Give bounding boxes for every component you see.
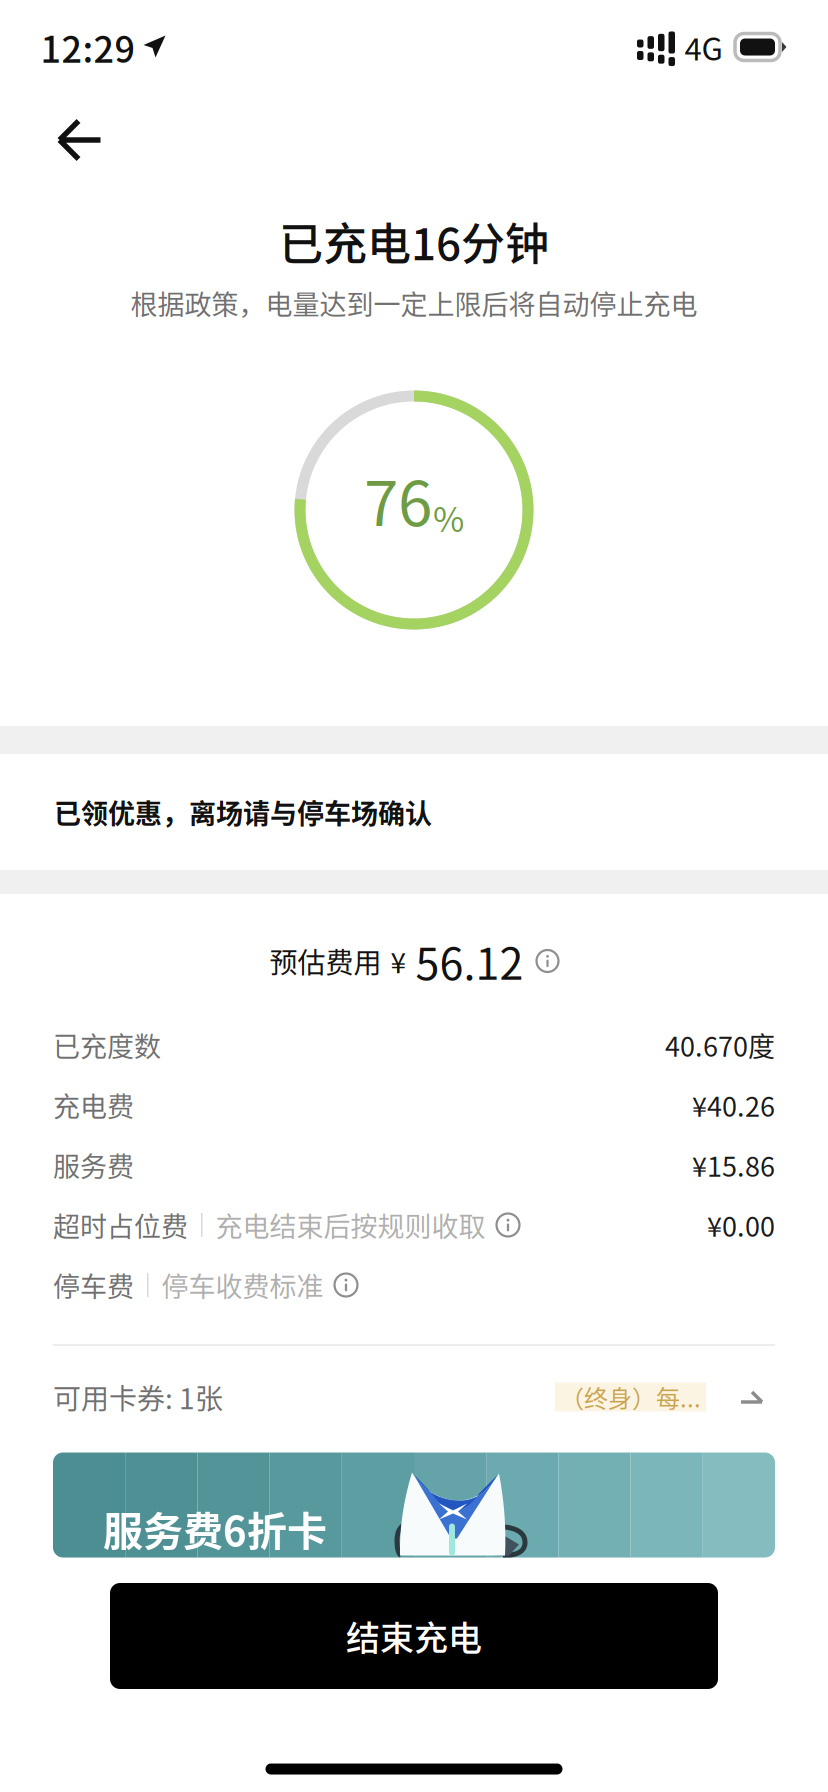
staticText: 充电费 — [53, 1085, 134, 1125]
staticText: 4G — [684, 25, 722, 69]
button[interactable]: 可用卡券: 1张 — [53, 1359, 775, 1435]
staticText: 已充度数 — [53, 1025, 161, 1065]
staticText: （终身）每... — [560, 1380, 701, 1414]
button[interactable]: 服务费6折卡 — [53, 1452, 775, 1557]
staticText: 充电结束后按规则收取 — [215, 1205, 485, 1245]
staticText: % — [433, 493, 464, 542]
staticText: 结束充电 — [346, 1611, 482, 1661]
staticText: 服务费6折卡 — [103, 1499, 327, 1557]
staticText: 超时占位费 — [53, 1205, 188, 1245]
staticText: ¥0.00 — [707, 1205, 775, 1245]
staticText: ¥40.26 — [692, 1085, 775, 1125]
staticText: 12:29 — [40, 21, 135, 73]
staticText: 40.670度 — [665, 1025, 775, 1065]
staticText: ¥ — [390, 941, 406, 981]
staticText: 预估费用 — [269, 941, 381, 981]
staticText: 已领优惠，离场请与停车场确认 — [54, 792, 432, 832]
button[interactable]: Back — [35, 93, 125, 187]
staticText: 服务费 — [53, 1145, 134, 1185]
staticText: 到店即享超值优惠 — [103, 1565, 311, 1603]
staticText: 根据政策，电量达到一定上限后将自动停止充电 — [130, 283, 697, 323]
button[interactable]: 结束充电 — [110, 1583, 718, 1689]
staticText: 可用卡券: 1张 — [53, 1377, 223, 1417]
staticText: ¥15.86 — [692, 1145, 775, 1185]
staticText: 停车费 — [53, 1265, 134, 1305]
staticText: 已充电16分钟 — [279, 209, 549, 273]
staticText: 停车收费标准 — [161, 1265, 323, 1305]
staticText: 76 — [364, 454, 432, 544]
staticText: 56.12 — [415, 930, 523, 992]
